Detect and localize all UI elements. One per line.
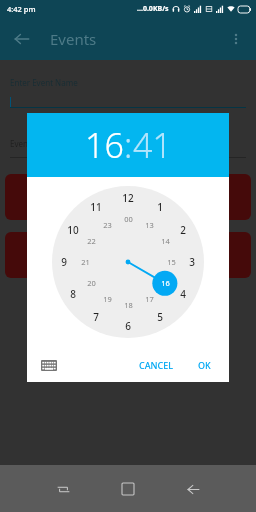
staticText: 1 — [157, 200, 163, 214]
button[interactable]: CANCEL — [131, 354, 182, 376]
button[interactable]: 4 — [173, 284, 193, 304]
button[interactable]: 23 — [97, 215, 117, 235]
button[interactable]: 14 — [155, 231, 175, 251]
staticText: Events — [50, 29, 97, 49]
button[interactable]: 8 — [63, 284, 83, 304]
staticText: OK — [198, 359, 211, 371]
button[interactable]: 18 — [118, 295, 138, 315]
button[interactable]: Recent apps — [43, 469, 83, 509]
button[interactable]: 10 — [63, 220, 83, 240]
button[interactable]: 15 — [161, 252, 181, 272]
staticText: 6 — [125, 319, 131, 333]
staticText: 16 — [85, 122, 124, 168]
button[interactable]: 16 — [155, 273, 175, 293]
button[interactable]: 20 — [81, 273, 101, 293]
staticText: 7 — [93, 310, 99, 324]
button[interactable]: 22 — [81, 231, 101, 251]
staticText: 2 — [180, 223, 186, 237]
button[interactable]: 5 — [150, 307, 170, 327]
staticText: 5 — [157, 310, 163, 324]
button[interactable]: 6 — [118, 316, 138, 336]
button[interactable]: More options — [222, 25, 250, 53]
button[interactable]: 00 — [118, 209, 138, 229]
staticText: 17 — [145, 294, 154, 304]
staticText: : — [124, 122, 133, 168]
button[interactable]: Back — [8, 25, 36, 53]
button[interactable]: 41 — [133, 122, 172, 168]
staticText: 9 — [61, 255, 67, 269]
staticText: 11 — [90, 200, 102, 214]
staticText: CANCEL — [139, 359, 174, 371]
staticText: Enter Event Name — [10, 77, 78, 88]
button[interactable]: Switch to keyboard input — [39, 355, 59, 375]
button[interactable]: 3 — [182, 252, 202, 272]
button[interactable]: 19 — [97, 289, 117, 309]
staticText: 12 — [122, 191, 134, 205]
staticText: 19 — [103, 294, 112, 304]
button[interactable]: Back — [173, 469, 213, 509]
button[interactable]: 17 — [139, 289, 159, 309]
staticText: 4:42 pm — [7, 4, 36, 14]
button[interactable]: OK — [190, 354, 219, 376]
staticText: 20 — [87, 278, 96, 288]
staticText: 16 — [161, 278, 170, 288]
button[interactable]: 7 — [86, 307, 106, 327]
button[interactable]: 16 — [85, 122, 124, 168]
staticText: 41 — [133, 122, 172, 168]
staticText: ...0.0KB/s — [137, 4, 169, 14]
staticText: 18 — [124, 300, 133, 310]
button[interactable]: 11 — [86, 197, 106, 217]
staticText: 13 — [145, 220, 154, 230]
staticText: 23 — [103, 220, 112, 230]
button[interactable]: 2 — [173, 220, 193, 240]
button[interactable]: 13 — [139, 215, 159, 235]
button[interactable]: 1 — [150, 197, 170, 217]
staticText: 3 — [189, 255, 195, 269]
staticText: 21 — [81, 257, 90, 267]
staticText: 22 — [87, 236, 96, 246]
staticText: 8 — [70, 287, 76, 301]
button[interactable]: 12 — [118, 188, 138, 208]
staticText: 00 — [124, 214, 133, 224]
button[interactable]: Home — [108, 469, 148, 509]
button[interactable]: 21 — [75, 252, 95, 272]
button[interactable]: 9 — [54, 252, 74, 272]
staticText: 10 — [67, 223, 79, 237]
staticText: Event — [10, 138, 31, 149]
staticText: 14 — [161, 236, 170, 246]
staticText: 4 — [180, 287, 186, 301]
staticText: 15 — [167, 257, 176, 267]
